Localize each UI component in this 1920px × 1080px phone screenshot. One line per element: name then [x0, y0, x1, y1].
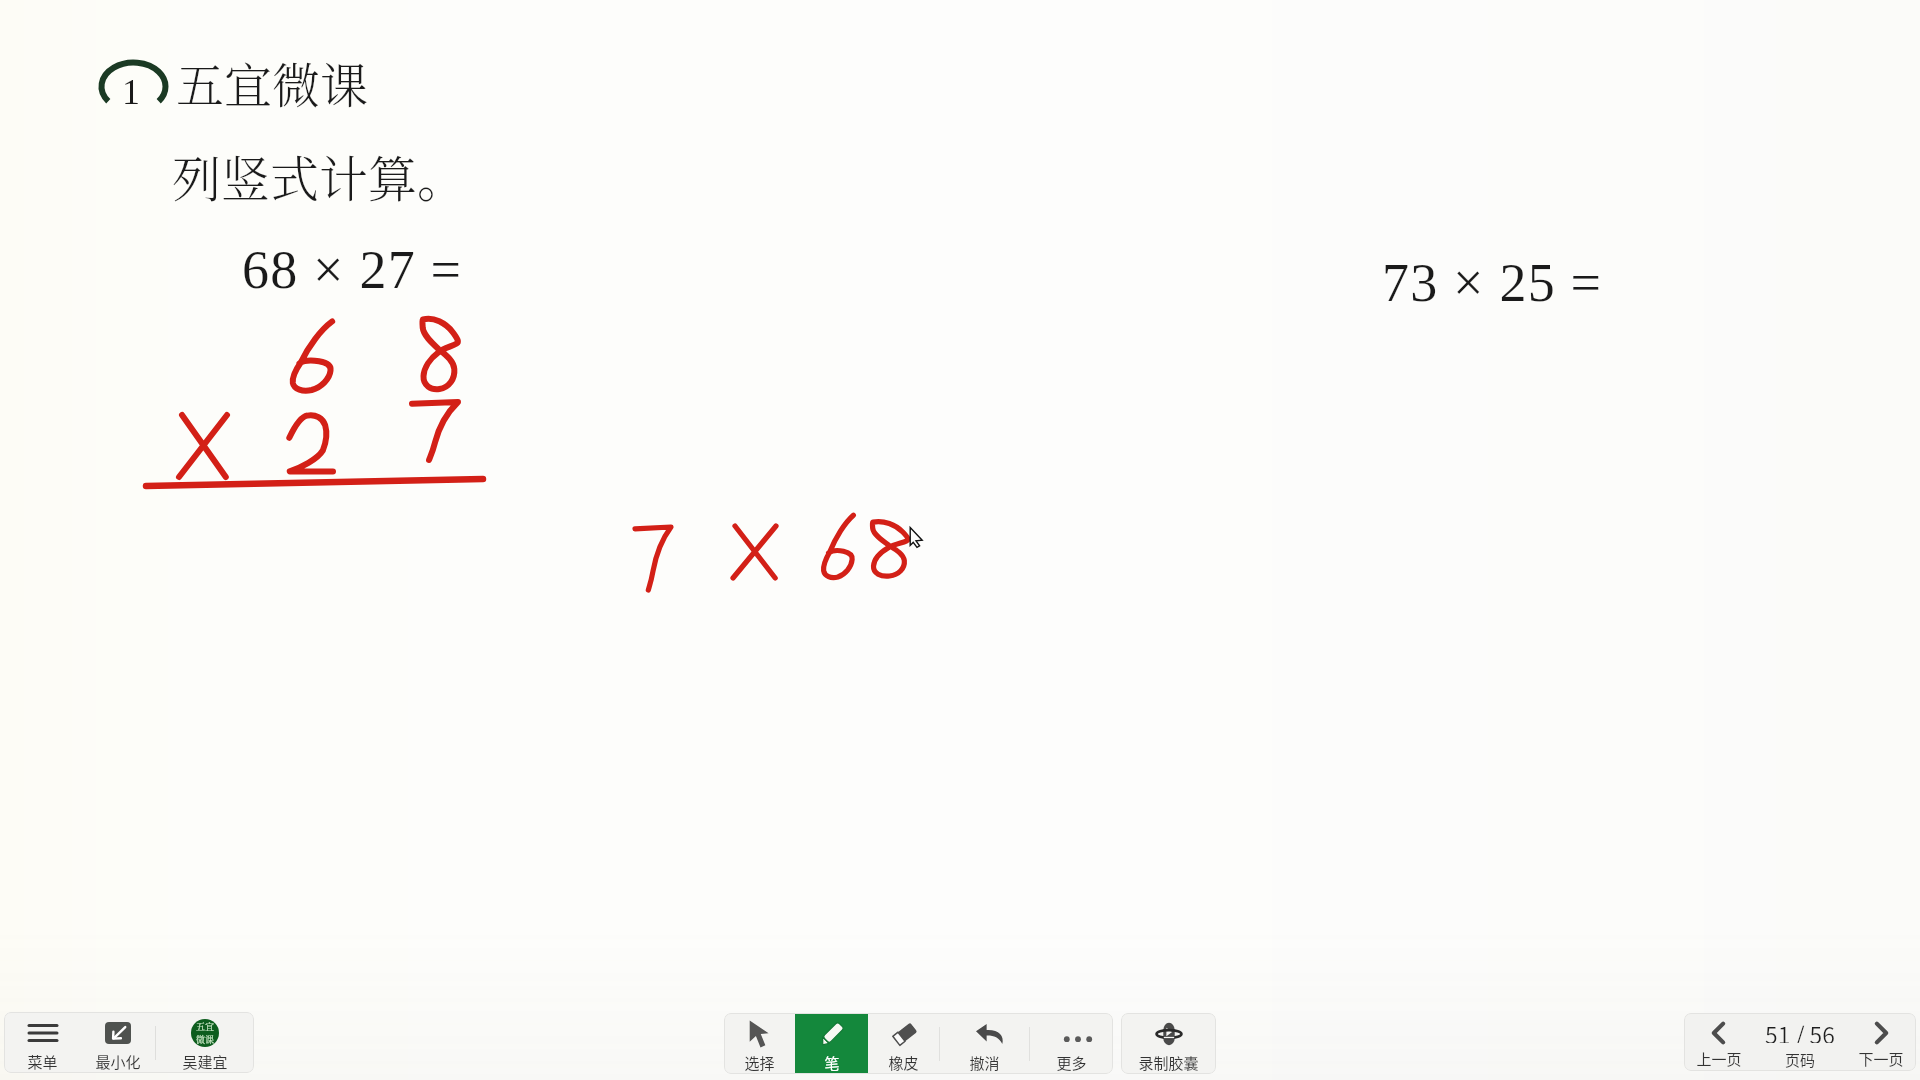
button[interactable]: Eraser — [868, 1013, 939, 1074]
staticText: 五宜 — [196, 1020, 215, 1033]
button[interactable]: Select — [724, 1013, 795, 1074]
button[interactable]: Minimize — [81, 1012, 155, 1073]
other: Undo — [976, 1024, 1004, 1044]
other: Next page — [1868, 1020, 1894, 1046]
button[interactable]: Record capsule — [1121, 1013, 1216, 1074]
staticText: 选择 — [744, 1052, 775, 1074]
staticText: 列竖式计算。 — [172, 141, 467, 211]
staticText: 上一页 — [1696, 1048, 1742, 1070]
staticText: 页码 — [1785, 1049, 1816, 1071]
staticText: 下一页 — [1858, 1048, 1904, 1070]
button[interactable]: Previous page — [1684, 1013, 1754, 1071]
other: More — [1064, 1024, 1092, 1044]
staticText: 五宜微课 — [176, 48, 369, 117]
staticText: 吴建宜 — [182, 1051, 228, 1073]
button[interactable]: 51 / 56 — [1754, 1013, 1846, 1071]
other: Minimize — [105, 1022, 131, 1044]
button[interactable]: Next page — [1846, 1013, 1916, 1071]
staticText: 笔 — [824, 1052, 840, 1074]
other: Eraser — [891, 1022, 918, 1047]
other: Select — [747, 1020, 774, 1048]
button[interactable]: More — [1030, 1013, 1113, 1074]
button[interactable]: Undo — [940, 1013, 1029, 1074]
staticText: 橡皮 — [888, 1052, 919, 1074]
other: User 吴建宜 — [191, 1019, 219, 1047]
other: Record capsule — [1156, 1020, 1182, 1048]
staticText: 微课 — [196, 1033, 215, 1046]
other: Previous page — [1706, 1020, 1732, 1046]
button[interactable]: Menu — [4, 1012, 81, 1073]
other: Pen — [818, 1020, 846, 1048]
staticText: 撤消 — [969, 1052, 1000, 1074]
staticText: 录制胶囊 — [1138, 1052, 1199, 1074]
button[interactable]: User 吴建宜 — [156, 1012, 254, 1073]
button[interactable]: Pen — [795, 1013, 868, 1074]
staticText: 73 × 25 = — [1382, 253, 1603, 313]
other: Menu — [29, 1024, 57, 1042]
staticText: 最小化 — [95, 1051, 141, 1073]
staticText: 68 × 27 = — [242, 240, 463, 300]
staticText: 1 — [122, 72, 140, 112]
staticText: 51 / 56 — [1765, 1017, 1835, 1043]
staticText: 更多 — [1056, 1052, 1087, 1074]
staticText: 菜单 — [27, 1051, 58, 1073]
